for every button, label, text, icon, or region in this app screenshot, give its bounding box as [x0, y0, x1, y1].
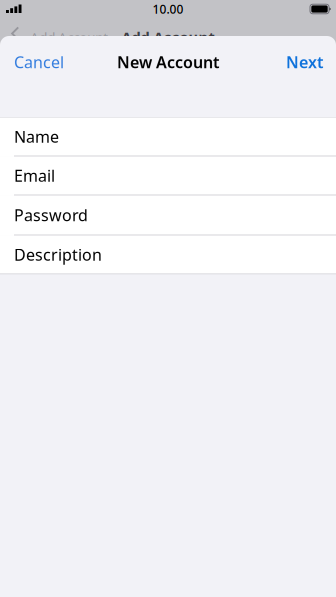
button[interactable]: Description: [0, 236, 336, 274]
staticText: Cancel: [14, 51, 64, 73]
staticText: Email: [14, 165, 55, 186]
staticText: Add Account: [121, 27, 214, 47]
button[interactable]: Next: [276, 36, 336, 88]
staticText: Name: [14, 126, 59, 147]
staticText: New Account: [117, 51, 219, 73]
button[interactable]: Name: [0, 118, 336, 157]
button[interactable]: Email: [0, 157, 336, 196]
staticText: Next: [286, 51, 323, 73]
staticText: 10.00: [152, 1, 183, 17]
staticText: Description: [14, 244, 102, 265]
button[interactable]: Password: [0, 196, 336, 236]
staticText: Add Account: [30, 28, 108, 46]
button[interactable]: Cancel: [0, 36, 74, 88]
button[interactable]: Add Account: [0, 18, 108, 56]
staticText: Password: [14, 204, 88, 226]
